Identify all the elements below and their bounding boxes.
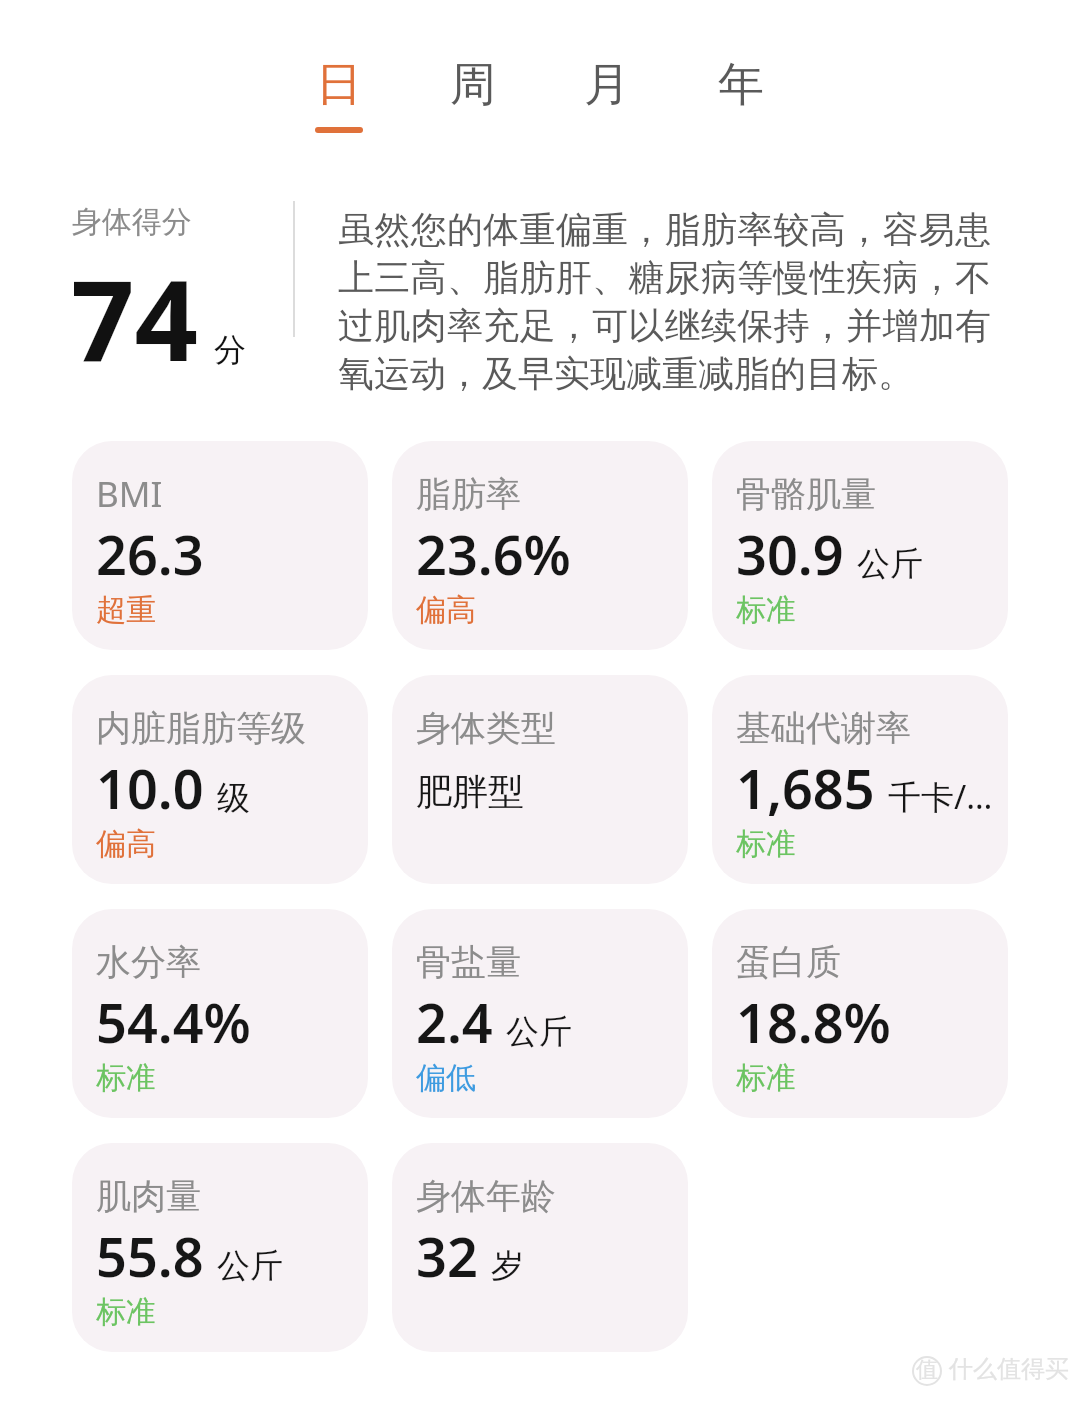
staticText: 内脏脂肪等级 (96, 712, 306, 749)
button[interactable]: 肌肉量 (72, 1143, 368, 1352)
staticText: 分 (214, 336, 246, 370)
staticText: 55.8 (96, 1233, 204, 1289)
button[interactable]: 骨骼肌量 (712, 441, 1008, 650)
staticText: 骨盐量 (416, 946, 521, 983)
staticText: 32 (416, 1233, 478, 1289)
staticText: 骨骼肌量 (736, 478, 876, 515)
staticText: 18.8% (736, 999, 891, 1055)
staticText: 月 (584, 56, 630, 114)
staticText: 蛋白质 (736, 946, 841, 983)
button[interactable]: 身体年龄 (392, 1143, 688, 1352)
staticText: 公斤 (857, 549, 923, 584)
staticText: 岁 (491, 1251, 524, 1286)
staticText: 身体类型 (416, 712, 556, 749)
other: 什么值得买 logo (912, 1356, 942, 1386)
staticText: 74 (71, 268, 198, 386)
button[interactable]: 基础代谢率 (712, 675, 1008, 884)
button[interactable]: BMI (72, 441, 368, 650)
staticText: 54.4% (96, 999, 251, 1055)
staticText: 什么值得买 (949, 1358, 1069, 1384)
button[interactable]: 水分率 (72, 909, 368, 1118)
button[interactable]: 日 (272, 0, 406, 134)
staticText: 年 (718, 56, 764, 114)
staticText: 23.6% (416, 531, 571, 587)
staticText: 1,685 (736, 765, 875, 821)
staticText: 26.3 (96, 531, 204, 587)
staticText: 公斤 (506, 1017, 572, 1052)
staticText: 千卡/… (888, 782, 993, 818)
staticText: 标准 (736, 1064, 796, 1096)
staticText: 标准 (736, 596, 796, 628)
staticText: 基础代谢率 (736, 712, 911, 749)
button[interactable]: 蛋白质 (712, 909, 1008, 1118)
staticText: BMI (96, 478, 163, 515)
staticText: 脂肪率 (416, 478, 521, 515)
button[interactable]: 脂肪率 (392, 441, 688, 650)
button[interactable]: 骨盐量 (392, 909, 688, 1118)
staticText: 公斤 (217, 1251, 283, 1286)
staticText: 超重 (96, 596, 156, 628)
staticText: 偏高 (416, 596, 476, 628)
button[interactable]: 内脏脂肪等级 (72, 675, 368, 884)
staticText: 30.9 (736, 531, 844, 587)
staticText: 偏高 (96, 830, 156, 862)
staticText: 肌肉量 (96, 1180, 201, 1217)
staticText: 标准 (736, 830, 796, 862)
staticText: 值 (916, 1360, 938, 1383)
staticText: 身体得分 (72, 208, 192, 240)
staticText: 标准 (96, 1064, 156, 1096)
staticText: 水分率 (96, 946, 201, 983)
staticText: 级 (217, 783, 250, 818)
button[interactable]: 周 (406, 0, 540, 134)
staticText: 2.4 (416, 999, 493, 1055)
button[interactable]: 身体类型 (392, 675, 688, 884)
staticText: 虽然您的体重偏重，脂肪率较高，容易患上三高、脂肪肝、糖尿病等慢性疾病，不过肌肉率… (338, 206, 991, 398)
staticText: 日 (316, 56, 362, 114)
staticText: 标准 (96, 1298, 156, 1330)
staticText: 偏低 (416, 1064, 476, 1096)
button[interactable]: 年 (674, 0, 808, 134)
button[interactable]: 月 (540, 0, 674, 134)
staticText: 肥胖型 (416, 776, 524, 814)
staticText: 周 (450, 56, 496, 114)
staticText: 身体年龄 (416, 1180, 556, 1217)
staticText: 10.0 (96, 765, 204, 821)
